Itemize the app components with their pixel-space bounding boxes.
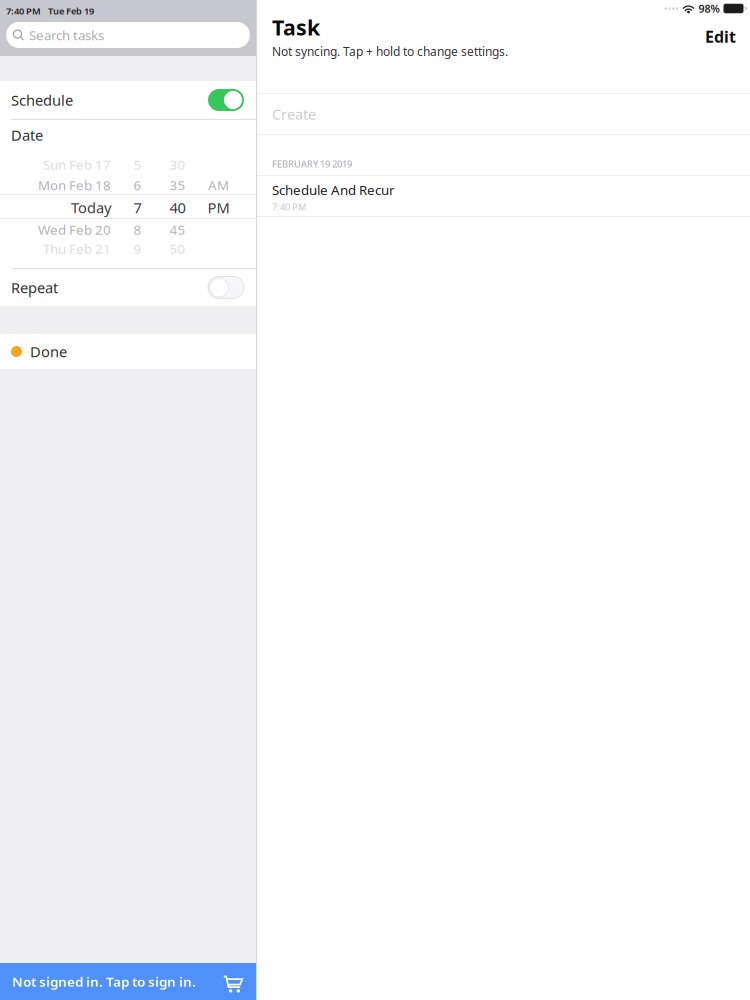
staticText: Repeat — [11, 278, 58, 297]
staticText: 7:40 PM — [272, 201, 306, 213]
staticText: 98% — [698, 1, 719, 16]
staticText: 7 — [133, 198, 141, 217]
button[interactable]: Create — [257, 94, 750, 134]
staticText: PM — [207, 198, 229, 217]
staticText: Task — [272, 13, 320, 41]
button[interactable]: Search tasks — [6, 22, 250, 48]
staticText: Schedule And Recur — [272, 181, 395, 199]
staticText: Sun Feb 17 — [43, 156, 111, 173]
button[interactable]: Schedule And Recur — [257, 176, 750, 216]
staticText: 35 — [169, 176, 185, 194]
staticText: Edit — [705, 26, 736, 47]
staticText: Wed Feb 20 — [38, 221, 111, 238]
staticText: FEBRUARY 19 2019 — [272, 158, 352, 170]
staticText: Schedule — [11, 90, 73, 110]
staticText: Today — [71, 198, 111, 217]
staticText: Thu Feb 21 — [43, 240, 111, 257]
staticText: 45 — [169, 221, 185, 238]
staticText: 5 — [133, 156, 141, 173]
button[interactable]: Schedule — [0, 81, 256, 119]
staticText: Date — [11, 125, 43, 145]
staticText: Not syncing. Tap + hold to change settin… — [272, 43, 508, 59]
button[interactable]: Repeat — [0, 269, 256, 306]
staticText: 7:40 PM — [6, 5, 41, 17]
staticText: Tue Feb 19 — [48, 5, 94, 17]
button[interactable]: Edit — [685, 16, 736, 53]
staticText: 30 — [169, 156, 185, 173]
staticText: AM — [208, 176, 229, 194]
staticText: 50 — [169, 240, 185, 257]
button[interactable]: Not signed in. Tap to sign in. — [0, 963, 256, 1000]
staticText: Search tasks — [29, 26, 104, 44]
staticText: Done — [30, 342, 67, 361]
button[interactable]: Done — [0, 334, 256, 369]
staticText: 40 — [169, 198, 185, 217]
staticText: Not signed in. Tap to sign in. — [12, 973, 196, 990]
staticText: Mon Feb 18 — [38, 176, 111, 194]
staticText: 6 — [133, 176, 141, 194]
staticText: Create — [272, 104, 316, 124]
staticText: 9 — [133, 240, 141, 257]
staticText: 8 — [133, 221, 141, 238]
